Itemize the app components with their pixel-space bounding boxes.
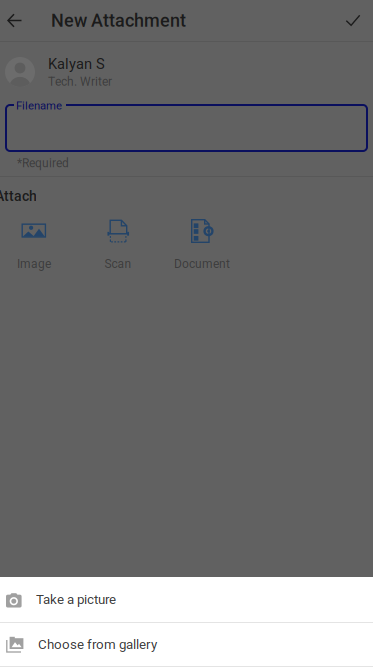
staticText: Take a picture [36, 592, 116, 607]
button[interactable]: Take a picture [0, 577, 373, 622]
staticText: Image [17, 257, 51, 271]
staticText: Kalyan S [48, 55, 105, 73]
staticText: Filename [16, 99, 62, 112]
button[interactable]: Image [0, 220, 76, 272]
button[interactable]: Document [160, 220, 244, 272]
staticText: Attach [0, 188, 37, 204]
staticText: Document [174, 257, 230, 271]
staticText: *Required [17, 156, 69, 170]
staticText: Choose from gallery [38, 637, 157, 652]
button[interactable]: Scan [76, 220, 160, 272]
staticText: New Attachment [51, 10, 186, 31]
button[interactable]: Choose from gallery [0, 622, 373, 667]
button[interactable]: Save [333, 0, 373, 41]
staticText: Tech. Writer [48, 75, 112, 89]
staticText: Scan [104, 257, 131, 271]
button[interactable]: Back [0, 0, 29, 41]
